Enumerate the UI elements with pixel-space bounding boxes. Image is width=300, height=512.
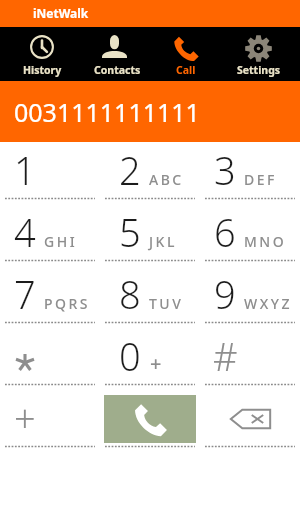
- staticText: DEF: [244, 170, 277, 189]
- staticText: +: [14, 392, 36, 444]
- staticText: 8: [119, 268, 141, 320]
- staticText: Call: [176, 63, 196, 77]
- button[interactable]: Call: [104, 395, 196, 443]
- staticText: WXYZ: [244, 294, 292, 313]
- button[interactable]: Call: [150, 27, 222, 81]
- staticText: 0: [119, 330, 141, 382]
- staticText: iNetWalk: [33, 5, 89, 21]
- button[interactable]: [0, 323, 100, 384]
- button[interactable]: History: [6, 27, 78, 81]
- button[interactable]: 3: [200, 142, 300, 198]
- staticText: 9: [214, 268, 236, 320]
- button[interactable]: 5: [100, 199, 200, 260]
- staticText: GHI: [44, 232, 78, 251]
- button[interactable]: Settings: [222, 27, 294, 81]
- staticText: History: [23, 63, 62, 77]
- button[interactable]: Contacts: [78, 27, 150, 81]
- staticText: PQRS: [44, 294, 91, 313]
- button[interactable]: 4: [0, 199, 100, 260]
- staticText: 7: [14, 268, 36, 320]
- button[interactable]: Backspace: [200, 385, 300, 446]
- staticText: Settings: [237, 63, 281, 77]
- button[interactable]: 1: [0, 142, 100, 198]
- button[interactable]: 0: [100, 323, 200, 384]
- button[interactable]: +: [0, 385, 100, 446]
- button[interactable]: 9: [200, 261, 300, 322]
- button[interactable]: #: [200, 323, 300, 384]
- staticText: 1: [14, 144, 36, 196]
- staticText: 3: [214, 144, 236, 196]
- staticText: TUV: [149, 294, 184, 313]
- staticText: MNO: [244, 232, 287, 251]
- staticText: 6: [214, 206, 236, 258]
- staticText: JKL: [149, 232, 177, 251]
- staticText: 4: [14, 206, 36, 258]
- button[interactable]: 7: [0, 261, 100, 322]
- staticText: 2: [119, 144, 141, 196]
- button[interactable]: 8: [100, 261, 200, 322]
- staticText: 5: [119, 206, 141, 258]
- button[interactable]: 6: [200, 199, 300, 260]
- staticText: 0031111111111: [14, 95, 200, 129]
- button[interactable]: 2: [100, 142, 200, 198]
- staticText: #: [213, 330, 238, 382]
- staticText: Contacts: [94, 63, 141, 77]
- staticText: +: [150, 350, 162, 377]
- staticText: ABC: [149, 170, 184, 189]
